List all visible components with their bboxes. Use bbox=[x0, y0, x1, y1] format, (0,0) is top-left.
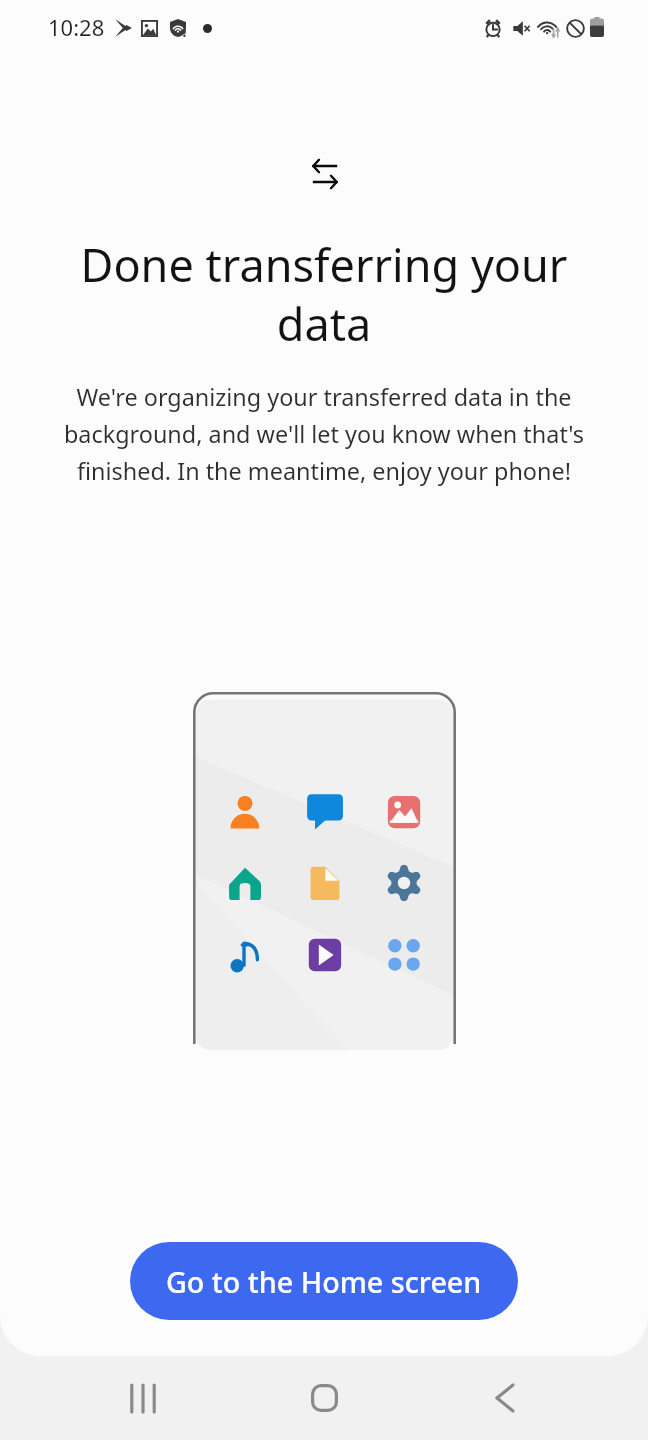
staticText: Done transferring your data bbox=[69, 234, 579, 354]
button[interactable]: Back bbox=[463, 1356, 547, 1440]
button[interactable]: Go to the Home screen bbox=[130, 1242, 518, 1320]
staticText: Go to the Home screen bbox=[166, 1262, 482, 1301]
button[interactable]: Home bbox=[282, 1356, 366, 1440]
staticText: 10:28 bbox=[48, 12, 105, 42]
staticText: We're organizing your transferred data i… bbox=[54, 381, 594, 487]
button[interactable]: Recents bbox=[101, 1356, 185, 1440]
